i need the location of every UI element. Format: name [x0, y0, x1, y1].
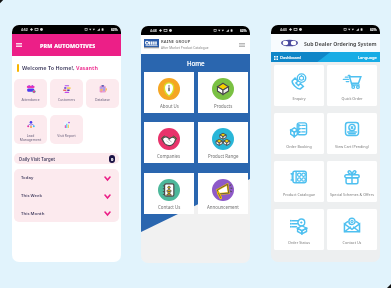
staticText: PRM AUTOMOTIVES — [40, 42, 96, 49]
staticText: Home — [187, 59, 205, 67]
staticText: Order Status — [274, 240, 324, 245]
button[interactable]: Order Booking — [274, 113, 324, 154]
button[interactable]: About Us — [144, 72, 194, 113]
staticText: Lead Management — [14, 133, 47, 142]
staticText: Database — [86, 97, 119, 102]
button[interactable]: This Week — [14, 187, 119, 205]
button[interactable]: Quick Order — [327, 65, 377, 106]
staticText: RAINE GROUP — [161, 39, 191, 45]
button[interactable]: Today — [14, 169, 119, 187]
staticText: Special Schemes & Offers — [327, 192, 377, 197]
staticText: Welcome To Home! — [22, 64, 73, 71]
staticText: 0 — [111, 157, 114, 162]
button[interactable]: Visit Report — [50, 115, 83, 144]
staticText: Vasanth — [76, 64, 98, 71]
button[interactable]: Daily Visit Target — [14, 153, 119, 164]
button[interactable]: Companies — [144, 122, 194, 163]
staticText: Quick Order — [327, 96, 377, 101]
staticText: Attendance — [14, 97, 47, 102]
staticText: 62% — [111, 28, 118, 32]
button[interactable]: Product Range — [198, 122, 248, 163]
button[interactable]: Products — [198, 72, 248, 113]
button[interactable]: Enquiry — [274, 65, 324, 106]
staticText: Today — [21, 175, 34, 181]
staticText: Customers — [50, 97, 83, 102]
staticText: Visit Report — [50, 133, 83, 138]
staticText: Products — [214, 103, 233, 109]
button[interactable]: Dashboard — [274, 55, 301, 60]
staticText: 4:43 — [280, 27, 287, 32]
staticText: Daily Visit Target — [19, 156, 56, 162]
staticText: 62% — [240, 29, 247, 33]
staticText: About Us — [160, 103, 179, 109]
button[interactable]: Attendance — [14, 79, 47, 108]
button[interactable]: Database — [86, 79, 119, 108]
button[interactable]: Menu — [237, 40, 246, 49]
staticText: 4:48 — [150, 28, 157, 33]
button[interactable]: Contact Us — [144, 173, 194, 214]
button[interactable]: Customers — [50, 79, 83, 108]
staticText: Product Catalogue — [274, 192, 324, 197]
button[interactable]: This Month — [14, 205, 119, 222]
staticText: Order Booking — [274, 144, 324, 149]
staticText: This Month — [21, 211, 45, 217]
staticText: This Week — [21, 193, 43, 199]
staticText: , — [73, 64, 76, 71]
button[interactable]: Order Status — [274, 209, 324, 250]
button[interactable]: Special Schemes & Offers — [327, 161, 377, 202]
staticText: Announcement — [207, 204, 239, 210]
staticText: Dashboard — [280, 55, 301, 60]
staticText: After Market Product Catalogue — [161, 46, 209, 50]
staticText: Contact Us — [158, 204, 181, 210]
button[interactable]: Menu — [14, 40, 24, 50]
staticText: 62% — [370, 28, 377, 32]
staticText: Product Range — [208, 153, 239, 159]
staticText: Sub Dealer Ordering System — [304, 40, 377, 47]
button[interactable]: Menu — [12, 34, 121, 56]
staticText: Contact Us — [327, 240, 377, 245]
button[interactable]: Product Catalogue — [274, 161, 324, 202]
button[interactable]: Announcement — [198, 173, 248, 214]
button[interactable]: Lead Management — [14, 115, 47, 144]
staticText: Companies — [157, 153, 181, 159]
staticText: Language — [358, 55, 377, 60]
button[interactable]: Contact Us — [327, 209, 377, 250]
staticText: View Cart (Pending) — [327, 144, 377, 149]
button[interactable]: Language — [358, 55, 377, 60]
button[interactable]: View Cart (Pending) — [327, 113, 377, 154]
staticText: 4:52 — [21, 27, 28, 32]
staticText: Enquiry — [274, 96, 324, 101]
